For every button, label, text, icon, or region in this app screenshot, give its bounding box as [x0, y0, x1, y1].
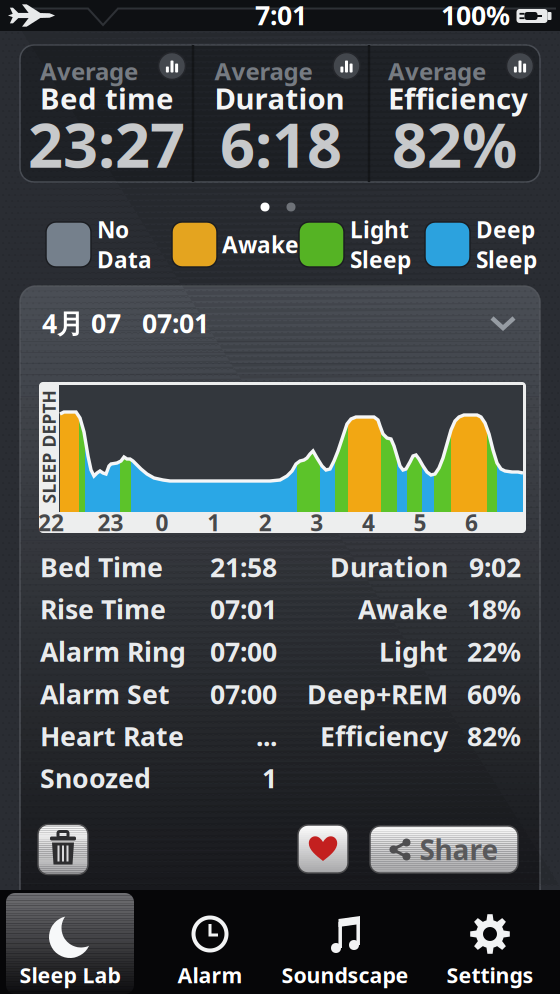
- staticText: No: [97, 214, 129, 244]
- button[interactable]: Delete: [38, 824, 88, 874]
- staticText: 5: [413, 507, 426, 537]
- staticText: 60%: [467, 676, 521, 712]
- staticText: 82%: [392, 103, 517, 185]
- staticText: Heart Rate: [40, 718, 184, 754]
- staticText: Bed time: [40, 78, 174, 117]
- staticText: Efficiency: [320, 718, 448, 754]
- staticText: Light: [350, 214, 409, 244]
- staticText: Alarm: [177, 961, 242, 989]
- staticText: Settings: [446, 961, 533, 989]
- staticText: 23: [98, 507, 124, 537]
- staticText: Average: [214, 55, 312, 87]
- staticText: 23:27: [28, 103, 185, 185]
- staticText: Average: [388, 55, 486, 87]
- staticText: Rise Time: [40, 591, 166, 627]
- staticText: Alarm Set: [40, 676, 170, 712]
- staticText: 1: [262, 760, 277, 796]
- staticText: Share: [419, 831, 498, 868]
- staticText: 3: [310, 507, 323, 537]
- staticText: Average: [40, 55, 138, 87]
- staticText: 100%: [441, 0, 510, 33]
- staticText: Sleep Lab: [19, 961, 120, 989]
- button[interactable]: Favorite: [298, 825, 348, 873]
- staticText: Deep: [476, 214, 535, 244]
- button[interactable]: Collapse: [492, 318, 514, 328]
- staticText: Awake: [222, 229, 299, 259]
- staticText: 1: [207, 507, 220, 537]
- button[interactable]: Alarm: [150, 893, 270, 994]
- staticText: 9:02: [469, 549, 521, 585]
- button[interactable]: Statistics: [506, 52, 533, 79]
- staticText: Soundscape: [281, 961, 408, 989]
- staticText: 7:01: [255, 0, 307, 33]
- staticText: 18%: [467, 591, 521, 627]
- staticText: Awake: [358, 591, 448, 627]
- staticText: 2: [259, 507, 272, 537]
- staticText: 4月 07 07:01: [42, 305, 209, 341]
- staticText: Alarm Ring: [40, 634, 186, 669]
- staticText: Sleep: [476, 244, 537, 275]
- staticText: Deep+REM: [307, 676, 448, 712]
- staticText: Sleep: [350, 244, 411, 275]
- staticText: 22: [38, 507, 64, 537]
- staticText: 07:01: [210, 591, 277, 627]
- button[interactable]: Sleep Lab: [8, 893, 132, 994]
- staticText: Bed Time: [40, 549, 163, 585]
- button[interactable]: Share: [370, 826, 518, 873]
- button[interactable]: Statistics: [158, 52, 185, 79]
- staticText: 4: [362, 507, 375, 537]
- button[interactable]: Soundscape: [285, 893, 415, 994]
- staticText: 07:00: [210, 676, 277, 712]
- staticText: ...: [256, 718, 277, 754]
- staticText: 6: [465, 507, 478, 537]
- staticText: 22%: [467, 634, 521, 669]
- staticText: Efficiency: [388, 78, 528, 117]
- staticText: 82%: [467, 718, 521, 754]
- staticText: Duration: [330, 549, 448, 585]
- staticText: 07:00: [210, 634, 277, 669]
- button[interactable]: Settings: [430, 893, 550, 994]
- button[interactable]: Statistics: [333, 52, 360, 79]
- staticText: 21:58: [210, 549, 277, 585]
- staticText: 6:18: [220, 103, 342, 185]
- staticText: Light: [379, 634, 448, 669]
- staticText: 0: [156, 507, 169, 537]
- staticText: Snoozed: [40, 760, 151, 796]
- staticText: Duration: [214, 78, 344, 117]
- staticText: SLEEP DEPTH: [0, 435, 105, 458]
- staticText: Data: [97, 244, 152, 275]
